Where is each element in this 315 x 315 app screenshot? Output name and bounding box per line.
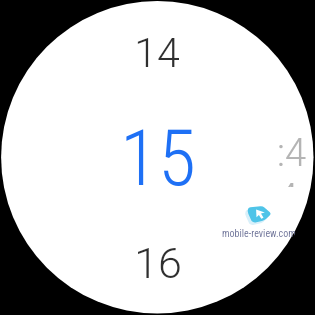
staticText: 14 [134,29,180,77]
button[interactable]: 16 [110,236,206,290]
button[interactable]: 15 [98,112,218,204]
button[interactable]: 14 [109,27,205,79]
button[interactable]: Minutes [272,130,315,186]
staticText: mobile-review.com [222,228,296,240]
staticText: 15 [120,113,196,204]
staticText: 16 [134,238,182,288]
staticText: :44 [277,131,315,187]
